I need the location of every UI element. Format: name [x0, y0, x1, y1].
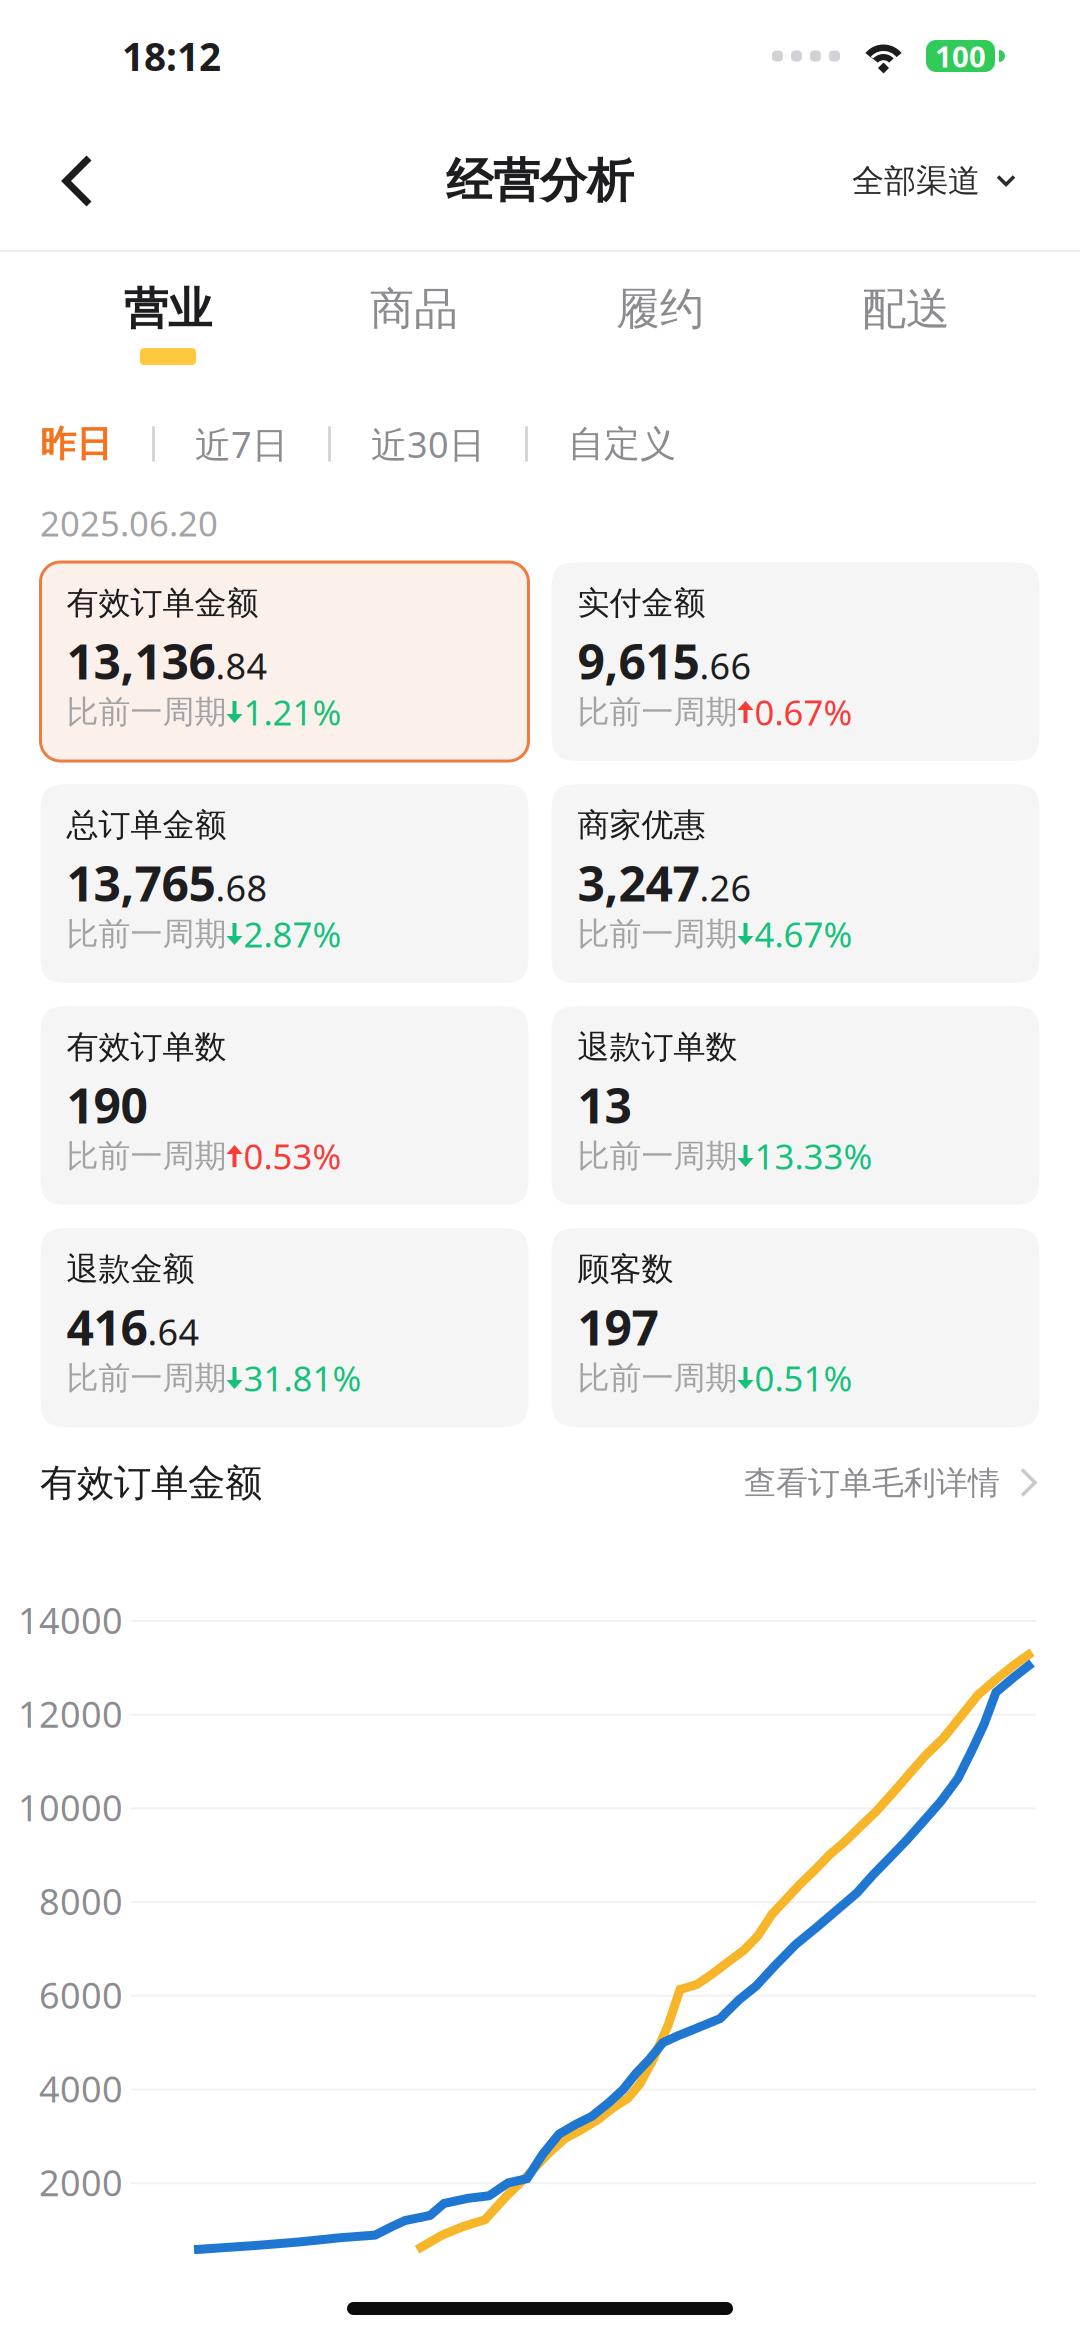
- staticText: 1.21%: [243, 689, 341, 735]
- staticText: 比前一周期: [66, 1136, 226, 1176]
- button[interactable]: 配送: [783, 252, 1029, 404]
- staticText: 4.67%: [754, 911, 852, 957]
- staticText: 416.64: [66, 1295, 199, 1359]
- staticText: 9,615.66: [577, 629, 751, 693]
- staticText: 0.67%: [754, 689, 852, 735]
- staticText: 有效订单金额: [66, 583, 258, 623]
- button[interactable]: 全部渠道: [852, 112, 1080, 250]
- button[interactable]: 总订单金额: [40, 784, 528, 983]
- staticText: 商品: [370, 282, 458, 336]
- button[interactable]: 退款金额: [40, 1228, 528, 1427]
- staticText: 2000: [39, 2158, 123, 2206]
- staticText: 6000: [39, 1971, 123, 2019]
- staticText: 近30日: [371, 420, 485, 468]
- staticText: 197: [577, 1295, 658, 1359]
- staticText: 实付金额: [577, 583, 705, 623]
- button[interactable]: 近30日: [371, 406, 485, 482]
- button[interactable]: 有效订单金额: [0, 1427, 1080, 1539]
- staticText: 近7日: [195, 420, 288, 468]
- staticText: 履约: [616, 282, 704, 336]
- staticText: 查看订单毛利详情: [744, 1463, 1000, 1503]
- staticText: 3,247.26: [577, 851, 751, 915]
- staticText: 2.87%: [243, 911, 341, 957]
- staticText: 比前一周期: [577, 1136, 737, 1176]
- staticText: 昨日: [40, 422, 112, 466]
- staticText: 13,136.84: [66, 629, 267, 693]
- staticText: 14000: [18, 1596, 123, 1644]
- staticText: 退款金额: [66, 1249, 194, 1289]
- staticText: 有效订单数: [66, 1027, 226, 1067]
- button[interactable]: 实付金额: [551, 562, 1039, 761]
- staticText: 0.53%: [243, 1133, 341, 1179]
- staticText: 13.33%: [754, 1133, 872, 1179]
- staticText: 13: [577, 1073, 631, 1137]
- staticText: 12000: [18, 1690, 123, 1738]
- button[interactable]: 商品: [291, 252, 537, 404]
- button[interactable]: 自定义: [568, 406, 676, 482]
- staticText: 0.51%: [754, 1355, 852, 1401]
- staticText: 比前一周期: [66, 1358, 226, 1398]
- staticText: 比前一周期: [66, 692, 226, 732]
- staticText: 比前一周期: [577, 692, 737, 732]
- button[interactable]: 有效订单数: [40, 1006, 528, 1205]
- staticText: 有效订单金额: [40, 1460, 262, 1506]
- button[interactable]: 退款订单数: [551, 1006, 1039, 1205]
- staticText: 18:12: [122, 30, 221, 82]
- staticText: 顾客数: [577, 1249, 673, 1289]
- staticText: 经营分析: [446, 152, 634, 210]
- staticText: 自定义: [568, 422, 676, 466]
- staticText: 营业: [124, 282, 212, 336]
- staticText: 10000: [18, 1783, 123, 1831]
- staticText: 31.81%: [243, 1355, 361, 1401]
- staticText: 全部渠道: [852, 161, 980, 201]
- button[interactable]: 有效订单金额: [40, 562, 528, 761]
- button[interactable]: 营业: [45, 252, 291, 404]
- staticText: 2025.06.20: [40, 500, 218, 546]
- staticText: 总订单金额: [66, 805, 226, 845]
- staticText: 190: [66, 1073, 147, 1137]
- staticText: 4000: [39, 2065, 123, 2112]
- staticText: 比前一周期: [66, 914, 226, 954]
- button[interactable]: Back: [0, 112, 150, 250]
- button[interactable]: 履约: [537, 252, 783, 404]
- staticText: 配送: [862, 282, 950, 336]
- button[interactable]: 近7日: [195, 406, 288, 482]
- button[interactable]: 商家优惠: [551, 784, 1039, 983]
- button[interactable]: 昨日: [40, 406, 112, 482]
- staticText: 8000: [39, 1877, 123, 1925]
- staticText: 100: [935, 36, 986, 75]
- staticText: 退款订单数: [577, 1027, 737, 1067]
- staticText: 比前一周期: [577, 914, 737, 954]
- button[interactable]: 顾客数: [551, 1228, 1039, 1427]
- staticText: 商家优惠: [577, 805, 705, 845]
- staticText: 比前一周期: [577, 1358, 737, 1398]
- staticText: 13,765.68: [66, 851, 267, 915]
